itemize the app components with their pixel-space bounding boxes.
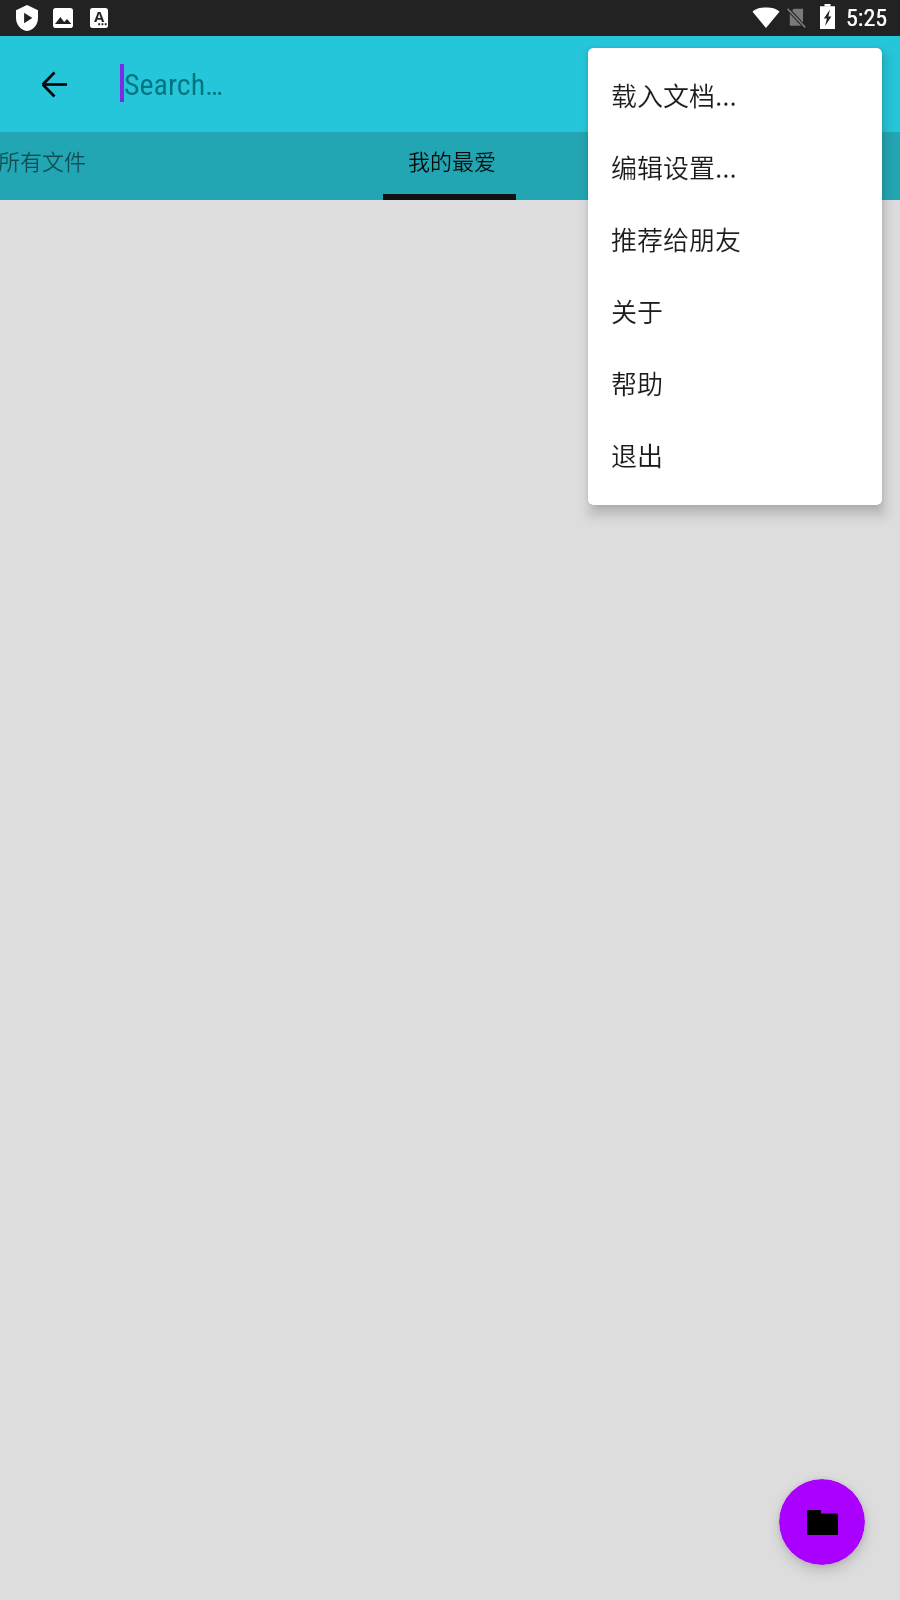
button[interactable] [496,132,900,200]
button[interactable]: 编辑设置... [588,131,882,203]
button[interactable]: New folder [779,1479,865,1565]
staticText: Search… [124,67,223,102]
staticText: 载入文档... [611,76,737,114]
staticText: 退出 [611,436,664,474]
button[interactable]: 我的最爱 [86,132,496,200]
button[interactable]: 推荐给朋友 [588,203,882,275]
button[interactable]: 帮助 [588,347,882,419]
staticText: 我的最爱 [408,144,497,176]
staticText: A [94,6,105,26]
staticText: 推荐给朋友 [611,220,742,258]
staticText: 帮助 [611,364,664,402]
staticText: 关于 [611,292,664,330]
button[interactable]: 所有文件 [0,132,87,200]
button[interactable]: 退出 [588,419,882,491]
staticText: 所有文件 [0,144,87,176]
staticText: 5:25 [846,4,888,32]
button[interactable]: 载入文档... [588,59,882,131]
staticText: 编辑设置... [611,148,737,186]
button[interactable]: 关于 [588,275,882,347]
button[interactable]: Back [24,54,84,114]
